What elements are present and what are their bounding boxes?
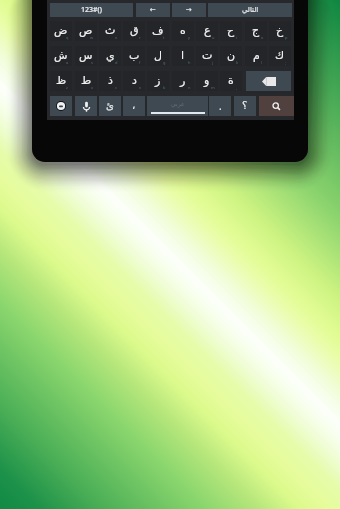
- staticText: ت: [202, 49, 213, 62]
- button[interactable]: 123#(): [50, 3, 133, 17]
- staticText: ط: [81, 74, 92, 87]
- button[interactable]: Backspace: [246, 71, 291, 91]
- button[interactable]: م: [245, 46, 267, 66]
- staticText: ذ: [108, 74, 113, 87]
- staticText: ه: [180, 24, 186, 37]
- button[interactable]: و: [196, 71, 218, 91]
- staticText: ي: [106, 49, 115, 62]
- staticText: w: [90, 35, 94, 40]
- button[interactable]: Space: [147, 96, 208, 116]
- button[interactable]: ل: [147, 46, 169, 66]
- button[interactable]: ئ: [99, 96, 121, 116]
- staticText: f: [139, 60, 141, 65]
- button[interactable]: .: [209, 96, 231, 116]
- button[interactable]: س: [75, 46, 97, 66]
- staticText: ث: [105, 24, 116, 37]
- staticText: h: [188, 60, 191, 65]
- staticText: ا: [181, 49, 185, 62]
- staticText: z: [66, 85, 68, 90]
- staticText: p: [285, 35, 288, 40]
- staticText: k: [236, 60, 239, 65]
- staticText: ج: [252, 24, 260, 37]
- staticText: g: [163, 60, 166, 65]
- staticText: ك: [275, 49, 285, 62]
- staticText: .: [219, 99, 222, 113]
- staticText: ،: [132, 100, 136, 112]
- staticText: التالي: [242, 6, 259, 14]
- button[interactable]: →: [172, 3, 206, 17]
- button[interactable]: ض: [50, 21, 72, 41]
- staticText: s: [91, 60, 93, 65]
- staticText: i: [236, 35, 238, 40]
- staticText: ل: [154, 49, 162, 62]
- staticText: →: [186, 6, 192, 14]
- button[interactable]: ب: [123, 46, 145, 66]
- staticText: ن: [227, 49, 236, 62]
- button[interactable]: [50, 96, 72, 116]
- staticText: t: [163, 35, 165, 40]
- button[interactable]: ج: [245, 21, 267, 41]
- staticText: v: [139, 85, 142, 90]
- button[interactable]: ق: [123, 21, 145, 41]
- button[interactable]: ش: [50, 46, 72, 66]
- staticText: ع: [204, 24, 211, 37]
- staticText: j: [212, 60, 214, 65]
- button[interactable]: ←: [136, 3, 170, 17]
- button[interactable]: ت: [196, 46, 218, 66]
- button[interactable]: ي: [99, 46, 121, 66]
- staticText: ←: [150, 6, 156, 14]
- button[interactable]: التالي: [208, 3, 292, 17]
- staticText: x: [91, 85, 94, 90]
- button[interactable]: ث: [99, 21, 121, 41]
- button[interactable]: ظ: [50, 71, 72, 91]
- staticText: ئ: [106, 100, 114, 112]
- button[interactable]: ر: [172, 71, 194, 91]
- staticText: ف: [152, 24, 164, 37]
- staticText: م: [253, 49, 260, 62]
- staticText: ق: [130, 24, 139, 37]
- staticText: عربي: [171, 100, 185, 107]
- staticText: m: [211, 85, 215, 90]
- staticText: ,: [236, 85, 238, 90]
- button[interactable]: ة: [220, 71, 242, 91]
- button[interactable]: [75, 96, 97, 116]
- staticText: ;: [285, 60, 287, 65]
- staticText: ب: [129, 49, 140, 62]
- staticText: l: [261, 60, 263, 65]
- staticText: ح: [227, 24, 235, 37]
- staticText: r: [139, 35, 141, 40]
- staticText: b: [163, 85, 166, 90]
- staticText: ة: [228, 74, 234, 87]
- staticText: ز: [155, 74, 161, 87]
- button[interactable]: ذ: [99, 71, 121, 91]
- button[interactable]: ع: [196, 21, 218, 41]
- staticText: a: [66, 60, 69, 65]
- button[interactable]: ص: [75, 21, 97, 41]
- button[interactable]: ز: [147, 71, 169, 91]
- button[interactable]: ن: [220, 46, 242, 66]
- button[interactable]: Search: [259, 96, 294, 116]
- button[interactable]: خ: [269, 21, 291, 41]
- button[interactable]: ح: [220, 21, 242, 41]
- staticText: u: [212, 35, 215, 40]
- button[interactable]: ه: [172, 21, 194, 41]
- staticText: q: [66, 35, 69, 40]
- staticText: خ: [276, 24, 284, 37]
- staticText: ش: [54, 49, 68, 62]
- staticText: ص: [79, 24, 93, 37]
- button[interactable]: ا: [172, 46, 194, 66]
- button[interactable]: د: [123, 71, 145, 91]
- staticText: س: [79, 49, 93, 62]
- button[interactable]: ط: [75, 71, 97, 91]
- button[interactable]: ؟: [234, 96, 256, 116]
- button[interactable]: ،: [123, 96, 145, 116]
- staticText: e: [115, 35, 118, 40]
- staticText: د: [132, 74, 137, 87]
- staticText: و: [204, 74, 210, 87]
- button[interactable]: ف: [147, 21, 169, 41]
- staticText: d: [115, 60, 118, 65]
- button[interactable]: ك: [269, 46, 291, 66]
- staticText: y: [188, 35, 191, 40]
- staticText: 123#(): [81, 5, 102, 15]
- staticText: ظ: [56, 74, 67, 87]
